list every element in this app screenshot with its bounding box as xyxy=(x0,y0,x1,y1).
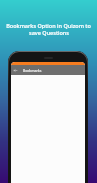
staticText: Bookmarks xyxy=(23,68,42,73)
other: Back xyxy=(13,68,18,73)
button[interactable]: Back xyxy=(11,65,85,75)
staticText: Bookmarks Option in Quizom to xyxy=(6,22,91,29)
staticText: save Questions xyxy=(29,29,69,36)
